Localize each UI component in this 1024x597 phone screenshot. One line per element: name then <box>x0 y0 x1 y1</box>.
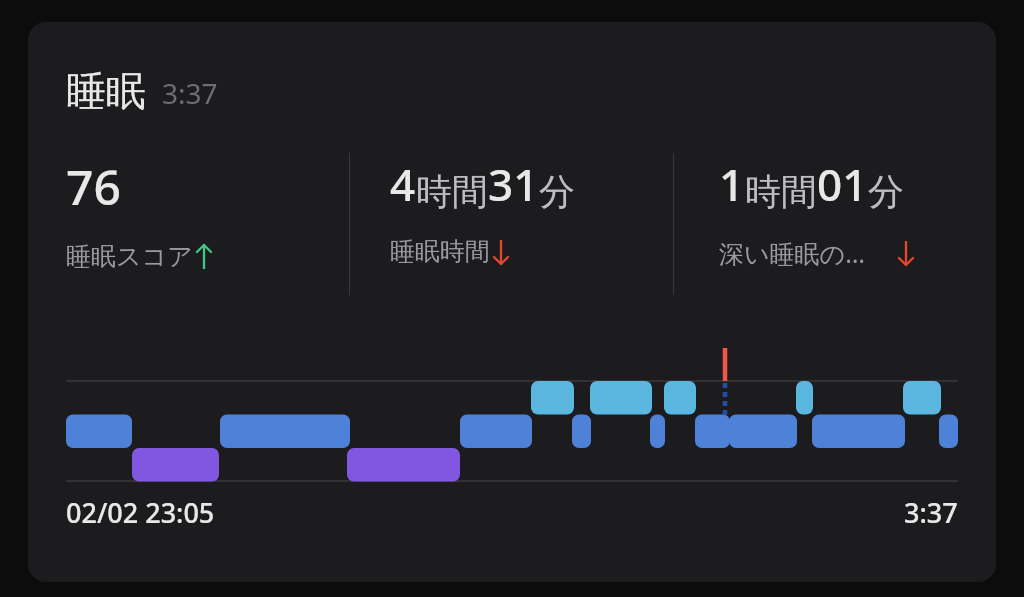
staticText: 深い睡眠の… <box>719 236 865 270</box>
staticText: 睡眠時間 <box>390 236 490 267</box>
staticText: 31 <box>488 154 539 214</box>
staticText: 02/02 23:05 <box>66 494 215 531</box>
staticText: 分 <box>868 169 904 214</box>
staticText: 76 <box>66 154 121 219</box>
staticText: 01 <box>817 154 868 214</box>
staticText: 時間 <box>745 169 817 214</box>
staticText: 睡眠スコア <box>66 241 193 272</box>
other: 下降傾向 <box>895 238 917 268</box>
button[interactable]: 睡眠ステージのグラフ <box>28 337 996 482</box>
button[interactable]: 76 <box>28 146 349 294</box>
button[interactable]: 4 <box>350 146 673 294</box>
staticText: 睡眠 <box>66 66 146 116</box>
other: 下降傾向 <box>490 237 512 267</box>
button[interactable]: 睡眠 <box>28 22 996 582</box>
staticText: 時間 <box>416 169 488 214</box>
staticText: 3:37 <box>162 74 218 112</box>
staticText: 4 <box>390 154 416 214</box>
other: 上昇傾向 <box>193 242 215 272</box>
staticText: 1 <box>719 154 745 214</box>
staticText: 3:37 <box>904 494 958 531</box>
button[interactable]: 1 <box>674 146 996 294</box>
staticText: 分 <box>539 169 575 214</box>
